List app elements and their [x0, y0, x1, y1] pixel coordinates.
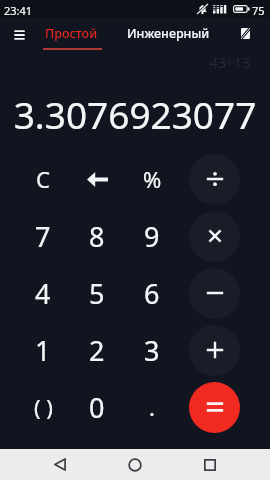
- button[interactable]: 7: [17, 210, 69, 262]
- staticText: Инженерный: [127, 25, 210, 42]
- button[interactable]: 3: [126, 324, 178, 376]
- button[interactable]: Recents: [188, 449, 232, 480]
- staticText: 2: [89, 332, 105, 369]
- button[interactable]: 1: [17, 324, 69, 376]
- button[interactable]: Add: [189, 325, 240, 376]
- button[interactable]: .: [126, 381, 178, 433]
- staticText: 3.3076923077: [0, 89, 270, 139]
- button[interactable]: History off: [226, 18, 270, 51]
- button[interactable]: Back: [38, 449, 82, 480]
- staticText: 3: [144, 332, 160, 369]
- staticText: .: [149, 392, 155, 422]
- staticText: 75: [252, 3, 265, 18]
- staticText: ( ): [34, 392, 53, 422]
- button[interactable]: Простой: [38, 18, 104, 51]
- button[interactable]: Menu: [0, 18, 38, 51]
- staticText: %: [143, 164, 162, 194]
- staticText: 4: [35, 275, 51, 312]
- staticText: 9: [144, 218, 160, 255]
- button[interactable]: 5: [71, 267, 123, 319]
- button[interactable]: Divide: [189, 154, 240, 205]
- button[interactable]: Multiply: [189, 211, 240, 262]
- button[interactable]: Backspace: [71, 153, 123, 205]
- button[interactable]: 0: [71, 381, 123, 433]
- button[interactable]: Equals: [189, 382, 240, 433]
- staticText: 1: [35, 332, 51, 369]
- staticText: 6: [144, 275, 160, 312]
- button[interactable]: 6: [126, 267, 178, 319]
- staticText: Простой: [45, 25, 98, 42]
- button[interactable]: Subtract: [189, 268, 240, 319]
- button[interactable]: 8: [71, 210, 123, 262]
- button[interactable]: Инженерный: [114, 18, 222, 51]
- staticText: 8: [89, 218, 105, 255]
- button[interactable]: ( ): [17, 381, 69, 433]
- staticText: 0: [89, 389, 105, 426]
- staticText: C: [36, 164, 50, 194]
- staticText: 7: [35, 218, 51, 255]
- button[interactable]: %: [126, 153, 178, 205]
- button[interactable]: 2: [71, 324, 123, 376]
- button[interactable]: 4: [17, 267, 69, 319]
- staticText: 5: [89, 275, 105, 312]
- button[interactable]: C: [17, 153, 69, 205]
- button[interactable]: 9: [126, 210, 178, 262]
- staticText: 23:41: [4, 3, 33, 18]
- button[interactable]: Home: [113, 449, 157, 480]
